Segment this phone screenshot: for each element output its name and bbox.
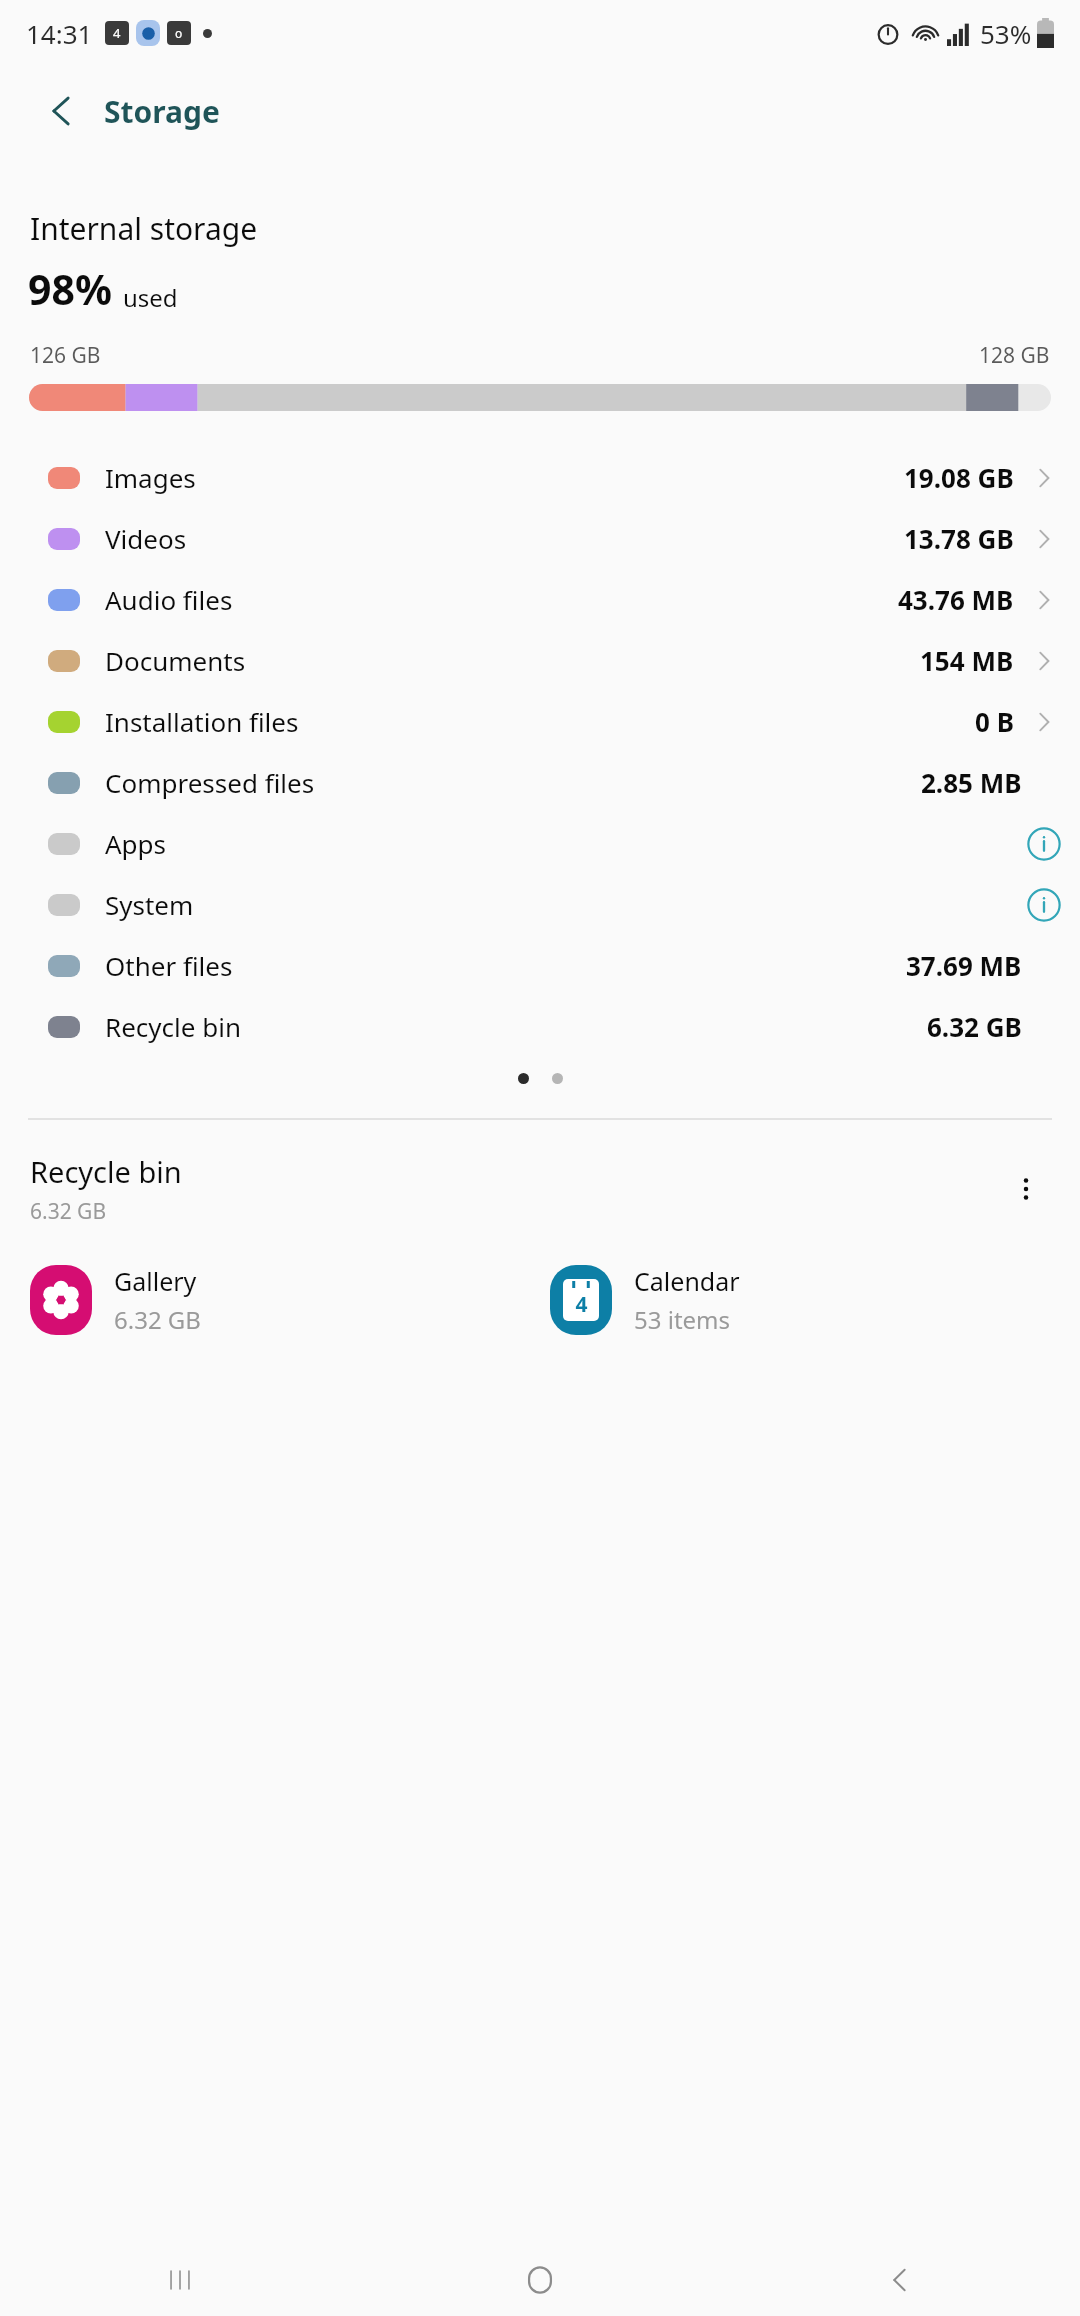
button[interactable]: Info about System bbox=[1017, 878, 1071, 932]
staticText: 37.69 MB bbox=[906, 948, 1022, 983]
staticText: Other files bbox=[105, 948, 233, 983]
staticText: Recycle bin bbox=[105, 1009, 241, 1044]
button[interactable]: Installation files bbox=[0, 691, 1080, 752]
button[interactable]: Audio files bbox=[0, 569, 1080, 630]
button[interactable]: Back bbox=[34, 83, 90, 139]
button[interactable]: Compressed files bbox=[0, 752, 1080, 813]
staticText: Documents bbox=[105, 643, 246, 678]
button[interactable]: Apps bbox=[0, 813, 1080, 874]
staticText: 53% bbox=[980, 16, 1032, 51]
staticText: 98% bbox=[28, 261, 112, 317]
button[interactable]: Recents bbox=[0, 2244, 360, 2316]
other: Calendar bbox=[550, 1265, 612, 1335]
other: Gallery bbox=[30, 1265, 92, 1335]
staticText: 14:31 bbox=[26, 16, 93, 51]
staticText: Images bbox=[105, 460, 196, 495]
staticText: System bbox=[105, 887, 194, 922]
staticText: Recycle bin bbox=[30, 1152, 182, 1191]
staticText: 6.32 GB bbox=[927, 1009, 1022, 1044]
staticText: Calendar bbox=[634, 1264, 740, 1298]
staticText: 0 B bbox=[975, 704, 1014, 739]
staticText: 154 MB bbox=[920, 643, 1014, 678]
staticText: Storage bbox=[104, 91, 220, 132]
staticText: 4 bbox=[575, 1290, 588, 1319]
staticText: o bbox=[175, 25, 183, 41]
staticText: Audio files bbox=[105, 582, 233, 617]
button[interactable]: More options bbox=[998, 1161, 1054, 1217]
staticText: Gallery bbox=[114, 1264, 197, 1298]
staticText: 43.76 MB bbox=[898, 582, 1014, 617]
button[interactable]: Recycle bin bbox=[0, 996, 1080, 1057]
staticText: 13.78 GB bbox=[904, 521, 1014, 556]
staticText: 126 GB bbox=[30, 341, 101, 370]
staticText: 6.32 GB bbox=[114, 1303, 201, 1336]
button[interactable]: Videos bbox=[0, 508, 1080, 569]
button[interactable]: Gallery bbox=[0, 1260, 540, 1340]
staticText: Installation files bbox=[105, 704, 299, 739]
button[interactable]: System bbox=[0, 874, 1080, 935]
staticText: Videos bbox=[105, 521, 187, 556]
staticText: Internal storage bbox=[30, 208, 258, 249]
staticText: 19.08 GB bbox=[904, 460, 1014, 495]
button[interactable]: Info about Apps bbox=[1017, 817, 1071, 871]
button[interactable]: Home bbox=[360, 2244, 720, 2316]
button[interactable]: Other files bbox=[0, 935, 1080, 996]
staticText: used bbox=[123, 281, 178, 314]
button[interactable]: Calendar bbox=[540, 1260, 1080, 1340]
button[interactable]: Images bbox=[0, 447, 1080, 508]
staticText: 4 bbox=[113, 24, 121, 42]
staticText: 53 items bbox=[634, 1303, 731, 1336]
staticText: Compressed files bbox=[105, 765, 315, 800]
button[interactable]: Back bbox=[720, 2244, 1080, 2316]
button[interactable]: Documents bbox=[0, 630, 1080, 691]
staticText: 2.85 MB bbox=[921, 765, 1022, 800]
staticText: Apps bbox=[105, 826, 167, 861]
staticText: 128 GB bbox=[979, 341, 1050, 370]
staticText: 6.32 GB bbox=[30, 1197, 107, 1226]
